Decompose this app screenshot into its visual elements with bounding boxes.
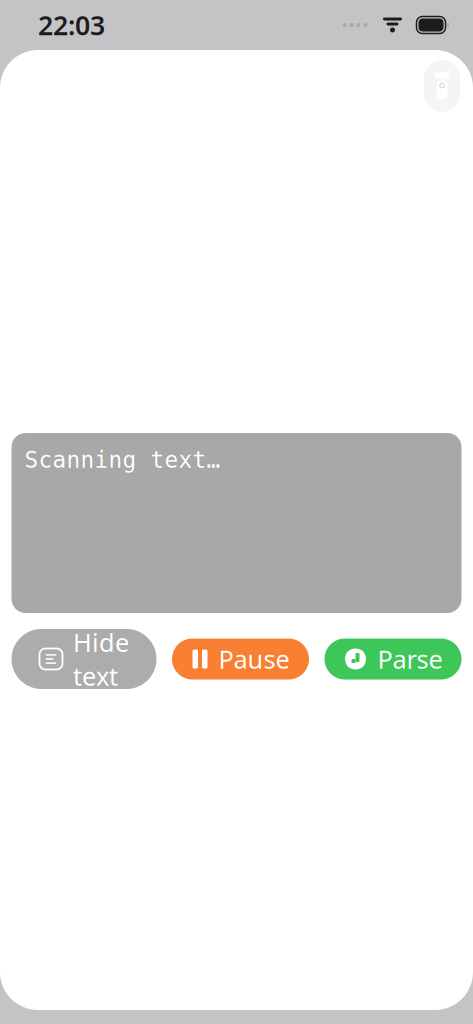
button[interactable]: Parse [324, 638, 461, 679]
button[interactable]: Pause [172, 638, 309, 679]
staticText: Pause [218, 642, 289, 676]
button[interactable]: Toggle flashlight [424, 60, 460, 112]
staticText: 22:03 [38, 7, 105, 43]
staticText: Parse [377, 642, 442, 676]
staticText: Scanning text… [24, 447, 220, 473]
staticText: Hide text [73, 625, 129, 693]
button[interactable]: Hide text [11, 629, 156, 689]
